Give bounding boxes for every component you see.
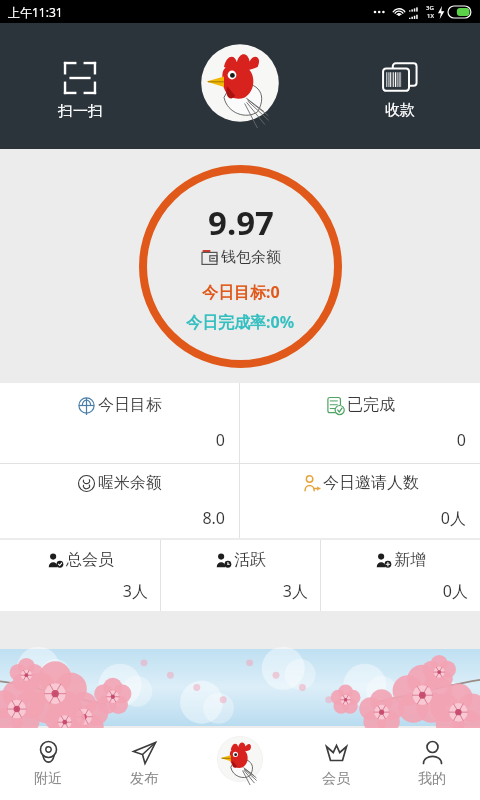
button[interactable]: 9.97 <box>186 200 295 333</box>
staticText: 1X <box>427 12 434 20</box>
staticText: 总会员 <box>66 550 114 570</box>
button[interactable]: 会员 <box>288 728 384 800</box>
staticText: 0 <box>14 429 225 451</box>
button[interactable]: 我的 <box>384 728 480 800</box>
button[interactable]: 活跃 <box>161 540 320 611</box>
button[interactable]: Home <box>192 728 288 800</box>
staticText: 3人 <box>173 580 308 602</box>
staticText: 0人 <box>333 580 468 602</box>
button[interactable]: 喔米余额 <box>0 464 239 538</box>
staticText: 今日邀请人数 <box>323 473 419 493</box>
staticText: 发布 <box>130 770 158 788</box>
button[interactable]: 今日邀请人数 <box>240 464 480 538</box>
staticText: 今日完成率:0% <box>186 311 295 333</box>
staticText: 今日目标 <box>98 395 162 415</box>
staticText: 扫一扫 <box>58 102 103 121</box>
staticText: 会员 <box>322 770 350 788</box>
staticText: 钱包余额 <box>221 248 281 267</box>
button[interactable]: 附近 <box>0 728 96 800</box>
button[interactable]: 总会员 <box>0 540 160 611</box>
staticText: 附近 <box>34 770 62 788</box>
staticText: 上午11:31 <box>8 4 63 20</box>
button[interactable]: Logo <box>160 23 320 149</box>
staticText: 3人 <box>12 580 148 602</box>
button[interactable]: Promotion banner <box>0 649 480 726</box>
staticText: 已完成 <box>347 395 395 415</box>
staticText: 喔米余额 <box>98 473 162 493</box>
staticText: 9.97 <box>208 200 274 245</box>
staticText: 8.0 <box>14 507 225 529</box>
button[interactable]: 收款 <box>320 23 480 149</box>
button[interactable]: 新增 <box>321 540 480 611</box>
staticText: 我的 <box>418 770 446 788</box>
button[interactable]: 已完成 <box>240 383 480 463</box>
staticText: 0 <box>254 429 466 451</box>
button[interactable]: 扫一扫 <box>0 23 160 149</box>
staticText: 0人 <box>254 507 466 529</box>
staticText: 活跃 <box>234 550 266 570</box>
staticText: 新增 <box>394 550 426 570</box>
staticText: 收款 <box>385 101 415 120</box>
button[interactable]: 发布 <box>96 728 192 800</box>
staticText: 3G <box>426 4 434 12</box>
button[interactable]: 今日目标 <box>0 383 239 463</box>
staticText: 今日目标:0 <box>202 281 280 303</box>
